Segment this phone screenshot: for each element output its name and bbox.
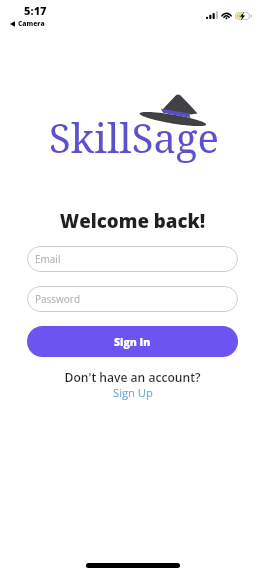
button[interactable]: Sign In: [27, 326, 238, 357]
staticText: Welcome back!: [0, 208, 265, 233]
staticText: Password: [35, 292, 81, 306]
staticText: SkillSage: [49, 110, 219, 164]
button[interactable]: Email: [27, 246, 238, 272]
button[interactable]: Back to Camera: [10, 19, 45, 28]
staticText: Email: [35, 252, 61, 266]
staticText: 5:17: [24, 3, 47, 18]
staticText: Camera: [18, 19, 45, 28]
button[interactable]: Password: [27, 286, 238, 312]
staticText: Don't have an account?: [0, 369, 265, 385]
button[interactable]: Sign Up: [113, 385, 153, 400]
staticText: Sign In: [114, 335, 151, 349]
